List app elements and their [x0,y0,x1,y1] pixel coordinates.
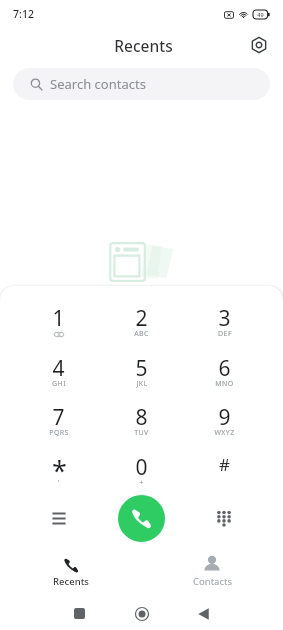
button[interactable]: * [17,453,100,497]
staticText: 49 [257,11,264,18]
staticText: TUV [134,428,149,438]
staticText: ' [58,478,60,488]
staticText: 1 [52,304,65,333]
staticText: * [52,452,67,489]
button[interactable]: 1 [17,304,100,348]
button[interactable]: Dialpad [204,498,244,538]
button[interactable]: Call [118,495,165,542]
staticText: WXYZ [214,428,235,438]
button[interactable]: Home [126,598,157,629]
staticText: Recents [114,35,173,56]
button[interactable]: 2 [100,304,183,348]
button[interactable]: # [183,453,266,497]
staticText: 9 [218,403,231,432]
button[interactable]: 9 [183,403,266,447]
button[interactable]: 3 [183,304,266,348]
staticText: 8 [135,403,148,432]
staticText: 0 [135,453,148,482]
staticText: Recents [53,575,89,588]
staticText: DEF [218,329,232,339]
button[interactable]: Settings [245,31,273,59]
staticText: Contacts [193,575,232,588]
button[interactable]: Contacts [141,548,283,592]
staticText: Search contacts [50,75,146,93]
staticText: 7:12 [13,7,34,21]
staticText: 6 [218,354,231,383]
button[interactable]: 7 [17,403,100,447]
staticText: 2 [135,304,148,333]
button[interactable]: 5 [100,354,183,398]
button[interactable]: 8 [100,403,183,447]
button[interactable]: 6 [183,354,266,398]
button[interactable]: Back [188,598,219,629]
staticText: MNO [215,379,234,389]
staticText: 3 [218,304,231,333]
button[interactable]: 4 [17,354,100,398]
staticText: GHI [52,379,66,389]
staticText: + [139,478,144,488]
staticText: 5 [135,354,148,383]
staticText: PQRS [49,428,69,438]
button[interactable]: 0 [100,453,183,497]
staticText: 4 [52,354,65,383]
staticText: 7 [52,403,65,432]
staticText: ABC [134,329,149,339]
button[interactable]: Recent apps [64,598,95,629]
staticText: # [219,453,230,476]
button[interactable]: Recents [0,548,141,592]
staticText: JKL [136,379,148,389]
button[interactable]: Search contacts [13,68,270,100]
button[interactable]: Open menu [39,498,79,538]
